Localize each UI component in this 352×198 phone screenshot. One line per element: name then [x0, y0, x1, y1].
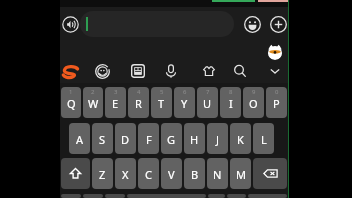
button[interactable]: G [161, 123, 182, 154]
staticText: 0 [275, 88, 279, 96]
button[interactable]: Shop [198, 60, 220, 82]
button[interactable]: Comma [105, 194, 125, 198]
staticText: 9 [252, 88, 256, 96]
staticText: X [122, 167, 129, 182]
staticText: 7 [206, 88, 210, 96]
button[interactable]: Add attachment [268, 14, 288, 34]
staticText: H [190, 132, 199, 147]
button[interactable]: S [92, 123, 113, 154]
staticText: 6 [183, 88, 187, 96]
button[interactable]: 4 [128, 87, 149, 118]
staticText: W [88, 96, 99, 111]
staticText: 5 [160, 88, 164, 96]
button[interactable]: N [207, 158, 228, 189]
button[interactable]: Voice note [60, 14, 80, 34]
button[interactable]: X [115, 158, 136, 189]
button[interactable]: Emoji keyboard [83, 194, 103, 198]
staticText: T [158, 96, 165, 111]
button[interactable] [80, 11, 234, 37]
button[interactable]: Search [229, 60, 251, 82]
button[interactable]: B [184, 158, 205, 189]
button[interactable]: Emoji [242, 14, 262, 34]
staticText: L [261, 132, 267, 147]
button[interactable]: Enter [248, 194, 287, 198]
staticText: A [76, 132, 84, 147]
button[interactable]: Collapse keyboard [264, 60, 286, 82]
staticText: N [213, 167, 222, 182]
button[interactable]: Bitmoji avatar [267, 44, 283, 60]
button[interactable]: 1 [61, 87, 81, 118]
staticText: K [237, 132, 244, 147]
button[interactable]: 3 [105, 87, 126, 118]
button[interactable]: K [230, 123, 251, 154]
button[interactable]: H [184, 123, 205, 154]
staticText: S [99, 132, 106, 147]
staticText: 4 [137, 88, 141, 96]
staticText: 1 [69, 88, 73, 96]
button[interactable]: Space [127, 194, 206, 198]
button[interactable]: Period [208, 194, 225, 198]
button[interactable]: J [207, 123, 228, 154]
staticText: I [229, 96, 233, 111]
staticText: O [249, 96, 258, 111]
button[interactable]: 6 [174, 87, 195, 118]
button[interactable]: 5 [151, 87, 172, 118]
button[interactable]: Language [227, 194, 246, 198]
button[interactable]: L [253, 123, 274, 154]
button[interactable]: Snapchat camera [59, 61, 81, 83]
staticText: B [191, 167, 199, 182]
staticText: M [236, 167, 246, 182]
staticText: G [167, 132, 176, 147]
button[interactable]: M [230, 158, 251, 189]
button[interactable]: Voice message [160, 60, 182, 82]
button[interactable]: 9 [243, 87, 264, 118]
button[interactable]: A [69, 123, 90, 154]
button[interactable]: Shift [61, 158, 90, 189]
button[interactable]: Symbols [61, 194, 81, 198]
staticText: V [168, 167, 175, 182]
button[interactable]: 2 [83, 87, 103, 118]
button[interactable]: Stickers [127, 60, 149, 82]
button[interactable]: D [115, 123, 136, 154]
button[interactable]: Lenses [91, 60, 113, 82]
button[interactable]: 7 [197, 87, 218, 118]
staticText: J [216, 132, 220, 147]
button[interactable]: Backspace [253, 158, 287, 189]
staticText: 8 [229, 88, 233, 96]
staticText: Q [67, 96, 76, 111]
staticText: 2 [91, 88, 95, 96]
button[interactable]: 8 [220, 87, 241, 118]
staticText: 3 [114, 88, 118, 96]
button[interactable]: V [161, 158, 182, 189]
staticText: U [203, 96, 212, 111]
staticText: R [135, 96, 142, 111]
staticText: D [121, 132, 130, 147]
staticText: P [273, 96, 280, 111]
button[interactable]: 0 [266, 87, 287, 118]
staticText: F [146, 132, 152, 147]
staticText: Z [99, 167, 106, 182]
staticText: C [145, 167, 152, 182]
staticText: E [112, 96, 119, 111]
button[interactable]: Z [92, 158, 113, 189]
button[interactable]: C [138, 158, 159, 189]
button[interactable]: F [138, 123, 159, 154]
staticText: Y [181, 96, 188, 111]
